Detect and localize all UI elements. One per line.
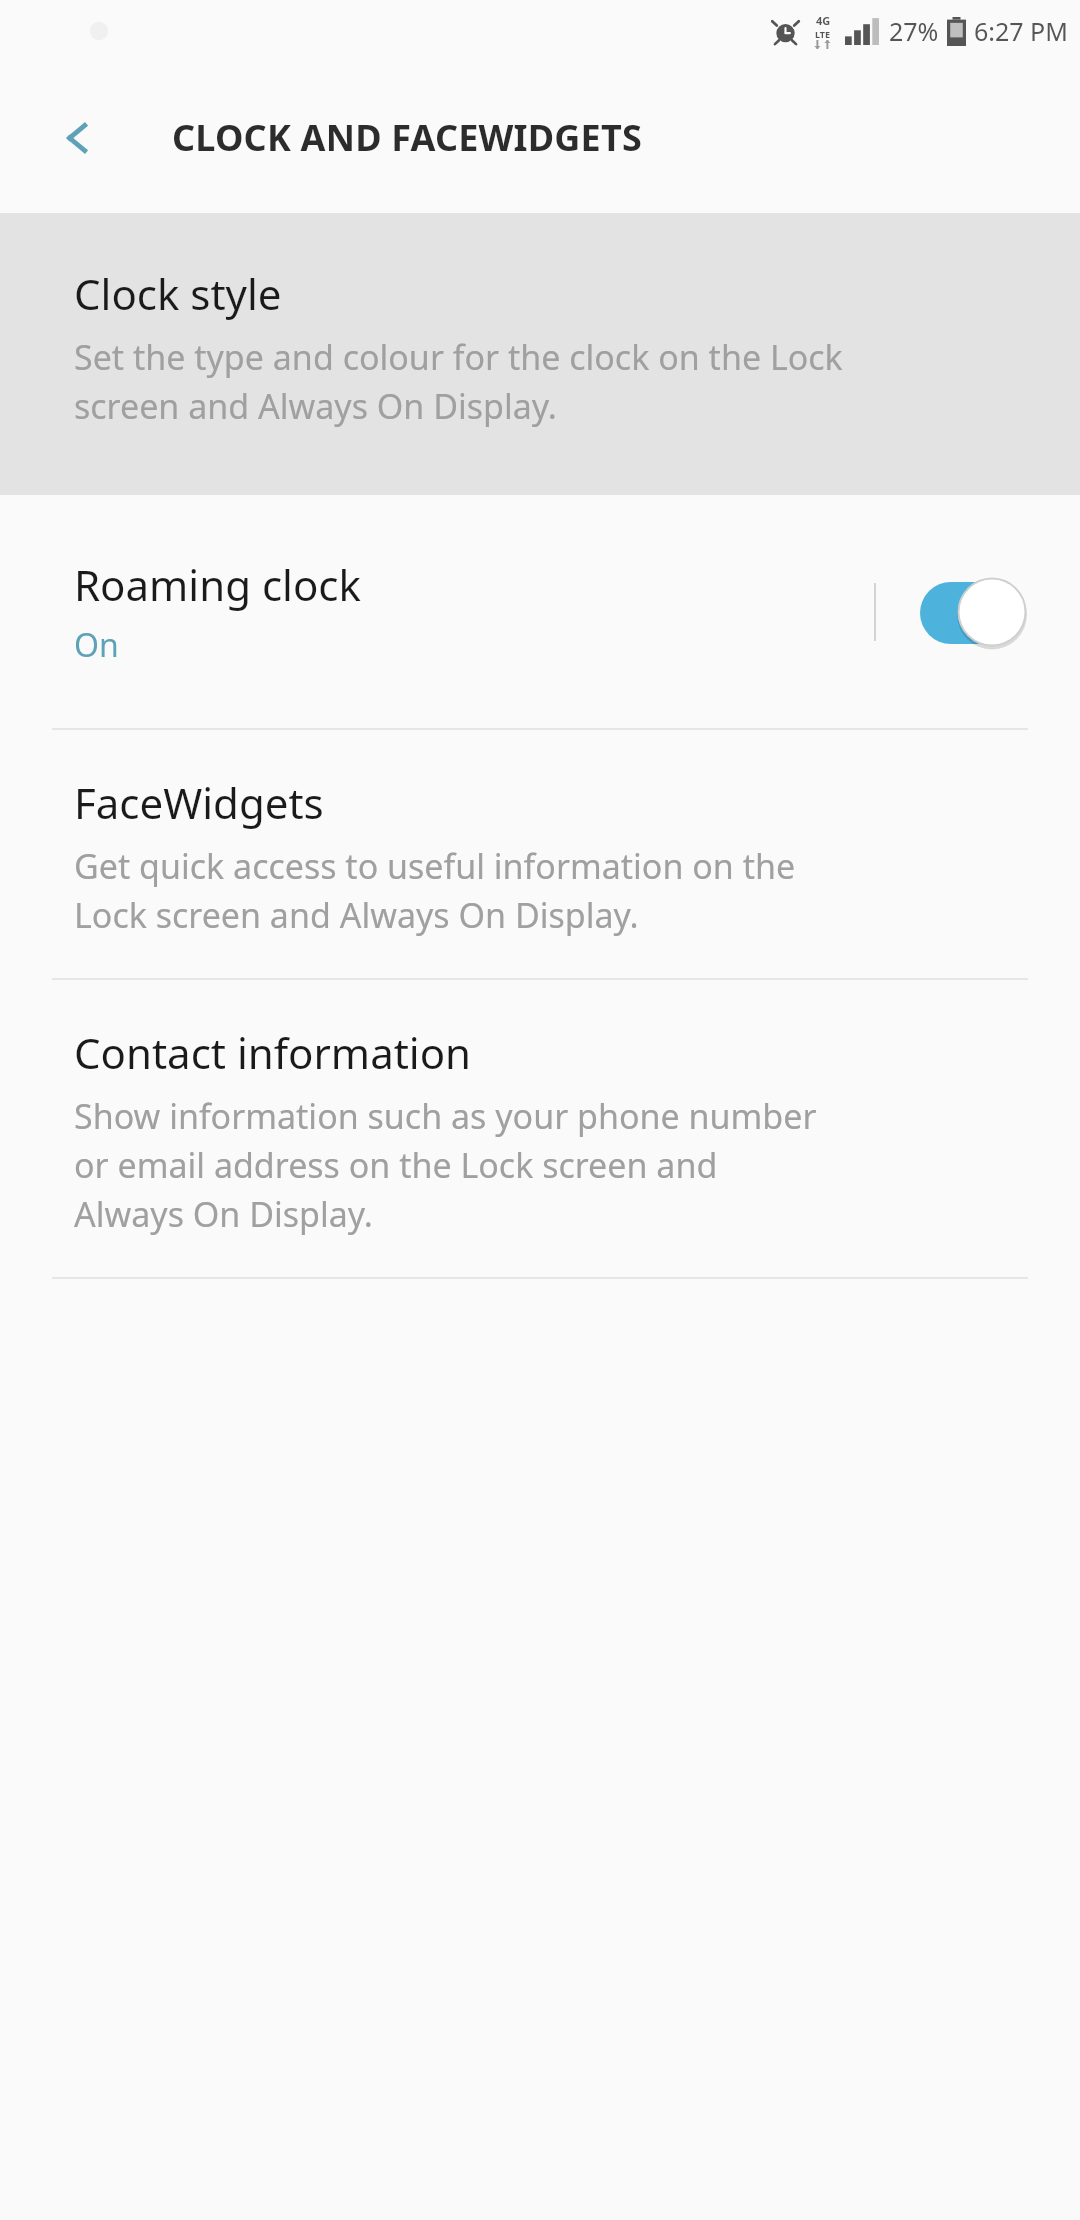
staticText: 4G bbox=[816, 13, 831, 28]
staticText: Set the type and colour for the clock on… bbox=[74, 334, 843, 429]
staticText: Contact information bbox=[74, 1024, 472, 1081]
staticText: Show information such as your phone numb… bbox=[74, 1093, 817, 1237]
staticText: LTE bbox=[815, 28, 831, 40]
button[interactable]: Roaming clock toggle, On bbox=[920, 576, 1028, 648]
staticText: Get quick access to useful information o… bbox=[74, 843, 796, 938]
button[interactable]: Roaming clock bbox=[0, 495, 1080, 728]
staticText: CLOCK AND FACEWIDGETS bbox=[172, 113, 642, 162]
staticText: Roaming clock bbox=[74, 556, 361, 613]
staticText: FaceWidgets bbox=[74, 774, 324, 831]
button[interactable]: Back bbox=[30, 90, 126, 186]
button[interactable]: FaceWidgets bbox=[0, 730, 1080, 978]
staticText: 6:27 PM bbox=[974, 14, 1068, 48]
button[interactable]: Clock style bbox=[0, 213, 1080, 495]
staticText: Clock style bbox=[74, 265, 282, 322]
staticText: 27% bbox=[889, 14, 939, 48]
button[interactable]: Contact information bbox=[0, 980, 1080, 1277]
staticText: On bbox=[74, 623, 119, 667]
